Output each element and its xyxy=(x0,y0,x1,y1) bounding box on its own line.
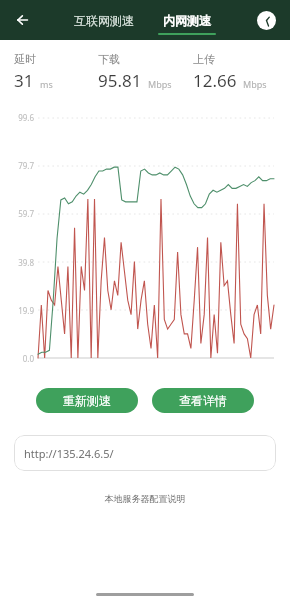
staticText: 延时 xyxy=(14,52,36,66)
staticText: 本地服务器配置说明 xyxy=(0,493,290,504)
staticText: 下载 xyxy=(98,52,120,66)
staticText: Mbps xyxy=(148,78,172,90)
button[interactable]: 查看详情 xyxy=(152,388,254,413)
staticText: 0.0 xyxy=(8,353,34,364)
button[interactable]: Back xyxy=(6,3,40,37)
staticText: 12.66 xyxy=(193,69,237,92)
staticText: 上传 xyxy=(193,52,215,66)
staticText: 19.9 xyxy=(8,305,34,316)
staticText: http://135.24.6.5/ xyxy=(24,446,114,461)
button[interactable]: History xyxy=(250,4,282,36)
button[interactable]: 互联网测速 xyxy=(74,0,134,40)
staticText: 互联网测速 xyxy=(74,13,134,28)
staticText: ms xyxy=(40,78,53,90)
staticText: 95.81 xyxy=(98,69,142,92)
staticText: 31 xyxy=(14,69,34,92)
staticText: 79.7 xyxy=(8,160,34,171)
button[interactable]: 内网测速 xyxy=(158,0,216,40)
staticText: 内网测速 xyxy=(163,13,211,28)
staticText: 99.6 xyxy=(8,112,34,123)
staticText: Mbps xyxy=(243,78,267,90)
button[interactable]: 重新测速 xyxy=(36,388,138,413)
staticText: 查看详情 xyxy=(179,393,227,408)
staticText: 59.7 xyxy=(8,208,34,219)
staticText: 39.8 xyxy=(8,257,34,268)
button[interactable]: http://135.24.6.5/ xyxy=(14,435,276,471)
staticText: 重新测速 xyxy=(63,393,111,408)
